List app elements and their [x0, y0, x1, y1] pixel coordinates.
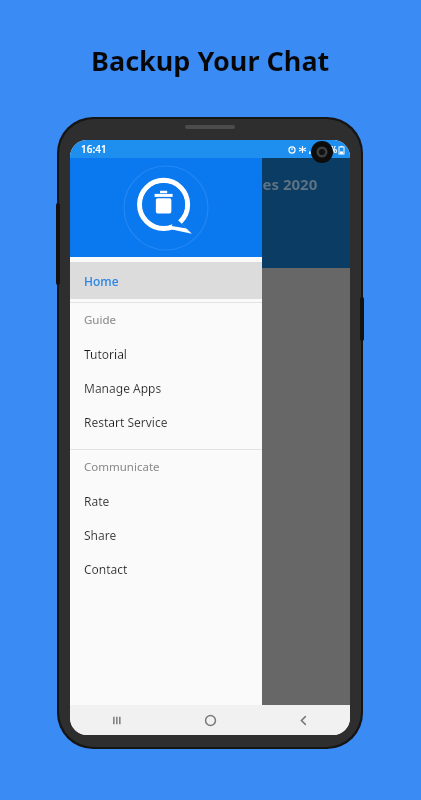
staticText: Home [84, 273, 119, 289]
staticText: Contact [84, 561, 128, 577]
button[interactable]: Restart Service [70, 405, 262, 439]
staticText: Tutorial [84, 346, 127, 362]
staticText: IMAGES [80, 245, 118, 259]
button[interactable]: Rate [70, 484, 262, 518]
button[interactable]: Back [257, 705, 350, 735]
button[interactable]: Home [164, 705, 257, 735]
button[interactable]: Share [70, 518, 262, 552]
staticText: Recover Deleted Messages 2020 [80, 174, 318, 194]
staticText: Backup Your Chat [91, 42, 330, 79]
staticText: Rate [84, 493, 110, 509]
button[interactable]: Recents [70, 705, 164, 735]
staticText: 26% [321, 144, 337, 155]
button[interactable]: Tutorial [70, 337, 262, 371]
button[interactable]: Manage Apps [70, 371, 262, 405]
button[interactable]: Home [70, 262, 262, 299]
staticText: Manage Apps [84, 380, 162, 396]
button[interactable]: Contact [70, 552, 262, 586]
staticText: Guide [84, 312, 117, 328]
staticText: 16:41 [81, 142, 107, 156]
staticText: Share [84, 527, 117, 543]
staticText: Restart Service [84, 414, 168, 430]
staticText: Communicate [84, 459, 160, 475]
